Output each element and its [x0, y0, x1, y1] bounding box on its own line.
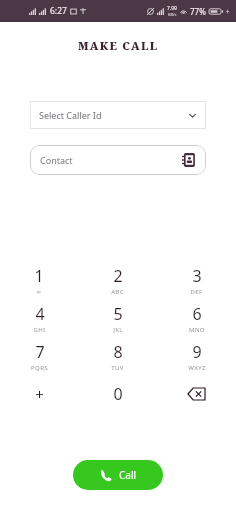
staticText: WXYZ: [188, 364, 206, 372]
staticText: 5: [113, 303, 123, 325]
staticText: 4: [35, 303, 45, 325]
button[interactable]: 3: [157, 261, 236, 299]
staticText: MAKE CALL: [78, 38, 159, 53]
button[interactable]: Contact: [30, 145, 206, 175]
staticText: KB/s: [168, 12, 177, 17]
staticText: TUV: [111, 364, 124, 372]
staticText: DEF: [190, 288, 203, 296]
staticText: JKL: [113, 326, 123, 334]
button[interactable]: 1: [0, 261, 78, 299]
button[interactable]: Call: [73, 460, 163, 490]
staticText: 9: [192, 341, 202, 363]
staticText: 7: [35, 341, 45, 363]
staticText: 2: [113, 265, 123, 287]
button[interactable]: 0: [78, 375, 157, 413]
staticText: +: [35, 384, 44, 404]
staticText: Select Caller Id: [39, 109, 102, 121]
button[interactable]: Pick contact: [182, 153, 196, 167]
staticText: ∞: [36, 288, 42, 295]
button[interactable]: 7: [0, 337, 78, 375]
staticText: MNO: [189, 326, 205, 334]
button[interactable]: 6: [157, 299, 236, 337]
button[interactable]: Backspace: [157, 375, 236, 413]
staticText: 77%: [190, 6, 206, 17]
staticText: GHI: [33, 326, 46, 334]
button[interactable]: 5: [78, 299, 157, 337]
staticText: 8: [113, 341, 123, 363]
button[interactable]: 2: [78, 261, 157, 299]
button[interactable]: 8: [78, 337, 157, 375]
staticText: 0: [113, 383, 123, 405]
staticText: PQRS: [31, 364, 48, 372]
staticText: ABC: [111, 288, 124, 296]
button[interactable]: 4: [0, 299, 78, 337]
staticText: Call: [119, 468, 137, 482]
staticText: 6:27: [50, 5, 67, 17]
staticText: 3: [192, 265, 202, 287]
staticText: 6: [192, 303, 202, 325]
button[interactable]: +: [0, 375, 78, 413]
button[interactable]: 9: [157, 337, 236, 375]
button[interactable]: Select Caller Id: [30, 101, 206, 129]
staticText: 1: [34, 265, 44, 287]
staticText: Contact: [40, 154, 182, 166]
staticText: 7.99: [167, 5, 177, 12]
